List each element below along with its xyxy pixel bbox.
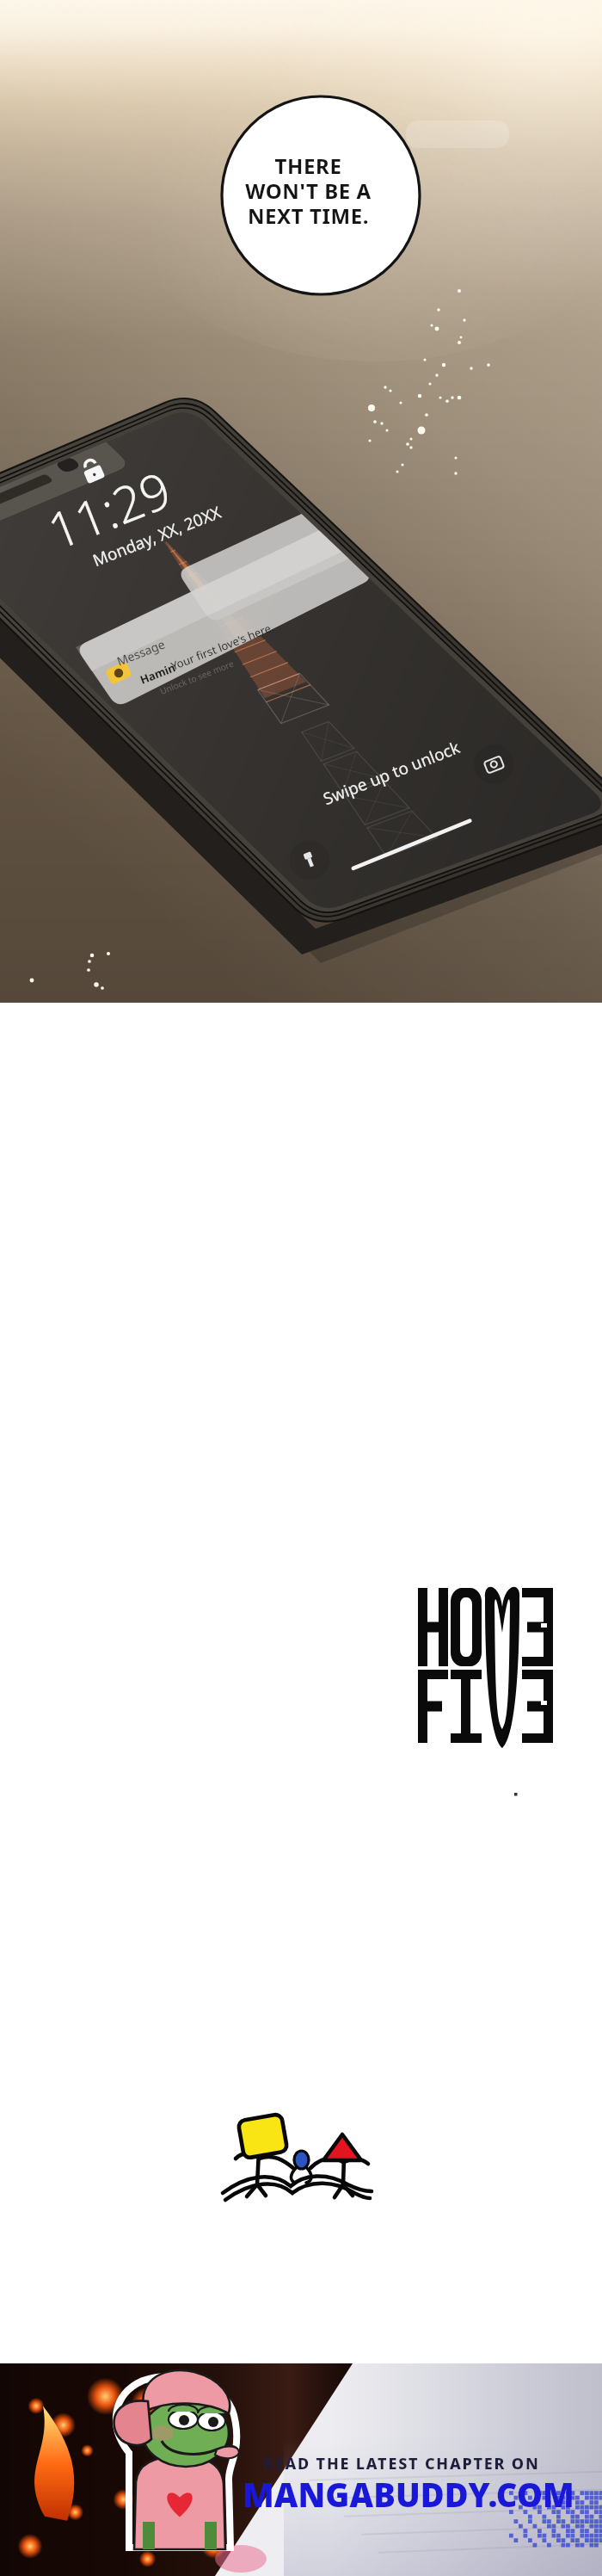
staticText: Unlock to see more [158, 657, 235, 697]
staticText: READ THE LATEST CHAPTER ON [263, 2453, 540, 2474]
staticText: Swipe up to unlock [320, 736, 463, 810]
staticText: 11:29 [38, 455, 180, 564]
staticText: Message [114, 636, 168, 669]
staticText: Hamin [138, 659, 178, 687]
staticText: THERE WON'T BE A NEXT TIME. [245, 151, 372, 230]
staticText: Monday, XX, 20XX [89, 501, 225, 572]
staticText: Your first love's here. [169, 619, 277, 674]
staticText: MANGABUDDY.COM [243, 2472, 574, 2517]
